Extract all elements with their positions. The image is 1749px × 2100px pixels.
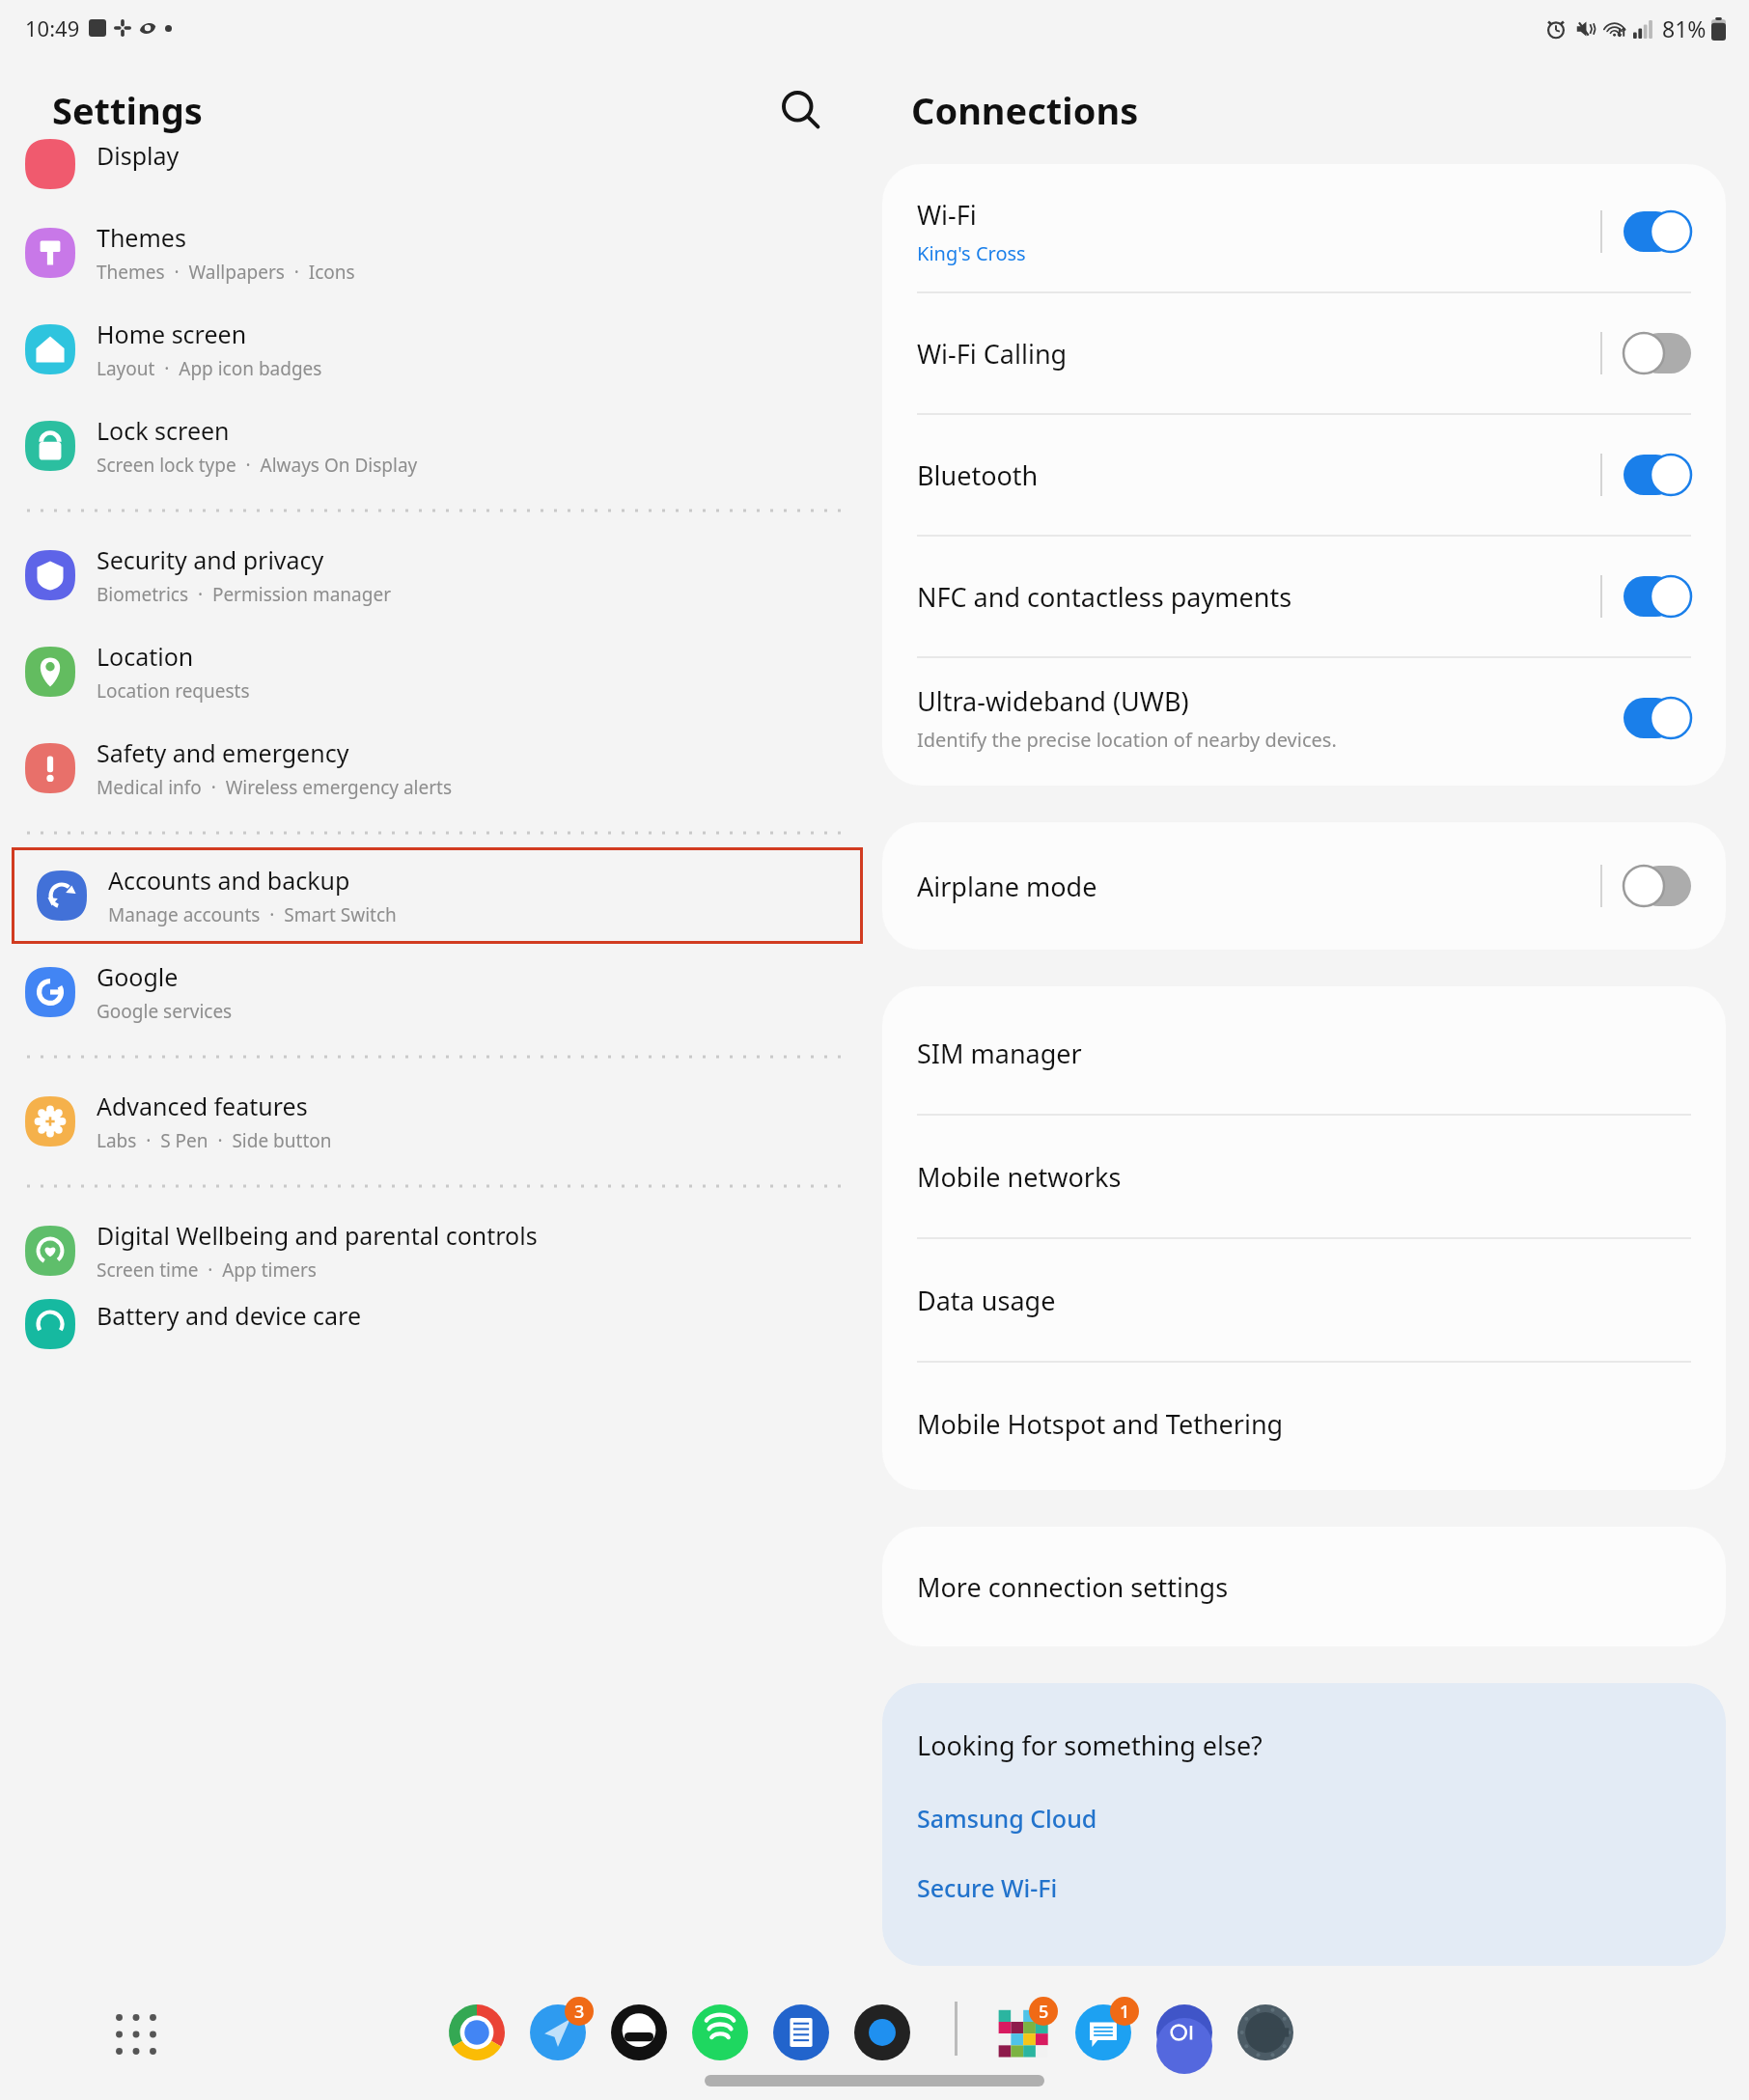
staticText: Connections — [911, 85, 1139, 135]
staticText: Google — [97, 960, 179, 993]
button[interactable]: App — [773, 1997, 837, 2060]
staticText: Biometrics · Permission manager — [97, 582, 391, 607]
button[interactable]: Location — [0, 623, 874, 720]
button[interactable]: Secure Wi-Fi — [917, 1871, 1058, 1904]
button[interactable]: Mobile Hotspot and Tethering — [882, 1363, 1726, 1484]
button[interactable]: SIM manager — [882, 992, 1726, 1114]
button[interactable]: Toggle — [1624, 576, 1691, 617]
button[interactable]: Toggle — [1624, 455, 1691, 495]
button[interactable]: App — [994, 1997, 1058, 2060]
staticText: Themes · Wallpapers · Icons — [97, 260, 355, 285]
button[interactable]: Samsung Cloud — [917, 1802, 1097, 1835]
button[interactable]: App — [449, 1997, 513, 2060]
button[interactable]: NFC and contactless payments — [882, 537, 1726, 656]
staticText: Samsung Cloud — [917, 1802, 1097, 1835]
button[interactable]: Battery and device care — [0, 1299, 874, 1367]
staticText: Home screen — [97, 318, 247, 350]
staticText: 81% — [1662, 14, 1707, 43]
button[interactable]: App — [1237, 1997, 1301, 2060]
button[interactable]: More connection settings — [882, 1527, 1726, 1646]
button[interactable]: Home screen — [0, 301, 874, 398]
staticText: Screen time · App timers — [97, 1257, 317, 1283]
staticText: Medical info · Wireless emergency alerts — [97, 775, 453, 800]
staticText: King's Cross — [917, 240, 1026, 266]
staticText: Accounts and backup — [108, 864, 350, 897]
button[interactable]: Toggle — [1624, 866, 1691, 906]
staticText: Airplane mode — [917, 869, 1097, 904]
staticText: Looking for something else? — [917, 1727, 1263, 1763]
staticText: Screen lock type · Always On Display — [97, 453, 418, 478]
staticText: 5 — [1039, 2000, 1049, 2024]
staticText: Mobile networks — [917, 1159, 1122, 1195]
staticText: Google services — [97, 999, 233, 1024]
button[interactable]: Security and privacy — [0, 527, 874, 623]
staticText: Wi-Fi — [917, 197, 977, 233]
staticText: Location requests — [97, 678, 250, 704]
staticText: Ultra-wideband (UWB) — [917, 683, 1189, 719]
button[interactable]: Mobile networks — [882, 1116, 1726, 1237]
staticText: Secure Wi-Fi — [917, 1871, 1058, 1904]
staticText: Display — [97, 139, 180, 172]
staticText: Labs · S Pen · Side button — [97, 1128, 332, 1153]
button[interactable]: Toggle — [1624, 333, 1691, 373]
staticText: More connection settings — [917, 1569, 1229, 1605]
button[interactable]: Apps — [114, 2012, 158, 2057]
button[interactable]: Ultra-wideband (UWB) — [882, 658, 1726, 778]
button[interactable]: App — [611, 1997, 675, 2060]
staticText: Mobile Hotspot and Tethering — [917, 1406, 1284, 1442]
staticText: Battery and device care — [97, 1299, 362, 1332]
button[interactable]: Safety and emergency — [0, 720, 874, 816]
staticText: Bluetooth — [917, 457, 1039, 493]
staticText: Themes — [97, 221, 186, 254]
staticText: Layout · App icon badges — [97, 356, 322, 381]
staticText: 1 — [1120, 2000, 1130, 2024]
button[interactable]: Wi-Fi Calling — [882, 293, 1726, 413]
staticText: Wi-Fi Calling — [917, 336, 1068, 372]
button[interactable]: App — [692, 1997, 756, 2060]
button[interactable]: App — [1156, 1997, 1220, 2060]
button[interactable]: Toggle — [1624, 211, 1691, 252]
staticText: Manage accounts · Smart Switch — [108, 902, 397, 927]
staticText: Advanced features — [97, 1090, 308, 1122]
staticText: Security and privacy — [97, 543, 324, 576]
button[interactable]: App — [854, 1997, 918, 2060]
button[interactable]: Lock screen — [0, 398, 874, 494]
button[interactable]: Airplane mode — [882, 822, 1726, 950]
button[interactable]: Digital Wellbeing and parental controls — [0, 1202, 874, 1299]
staticText: SIM manager — [917, 1036, 1082, 1071]
button[interactable]: Google — [0, 944, 874, 1040]
staticText: 3 — [574, 2000, 585, 2024]
button[interactable]: Themes — [0, 205, 874, 301]
button[interactable]: Advanced features — [0, 1073, 874, 1170]
button[interactable]: Data usage — [882, 1239, 1726, 1361]
button[interactable]: Accounts and backup — [12, 847, 863, 944]
button[interactable]: App — [530, 1997, 594, 2060]
button[interactable]: Search — [778, 88, 822, 132]
staticText: NFC and contactless payments — [917, 579, 1292, 615]
staticText: Digital Wellbeing and parental controls — [97, 1219, 538, 1252]
staticText: Location — [97, 640, 194, 673]
staticText: Safety and emergency — [97, 736, 349, 769]
button[interactable]: Wi-Fi — [882, 172, 1726, 291]
staticText: Data usage — [917, 1283, 1056, 1318]
staticText: Lock screen — [97, 414, 230, 447]
staticText: Identify the precise location of nearby … — [917, 727, 1337, 753]
button[interactable]: Bluetooth — [882, 415, 1726, 535]
staticText: Settings — [52, 85, 203, 135]
staticText: 10:49 — [25, 14, 80, 42]
button[interactable]: App — [1075, 1997, 1139, 2060]
button[interactable]: Toggle — [1624, 698, 1691, 738]
